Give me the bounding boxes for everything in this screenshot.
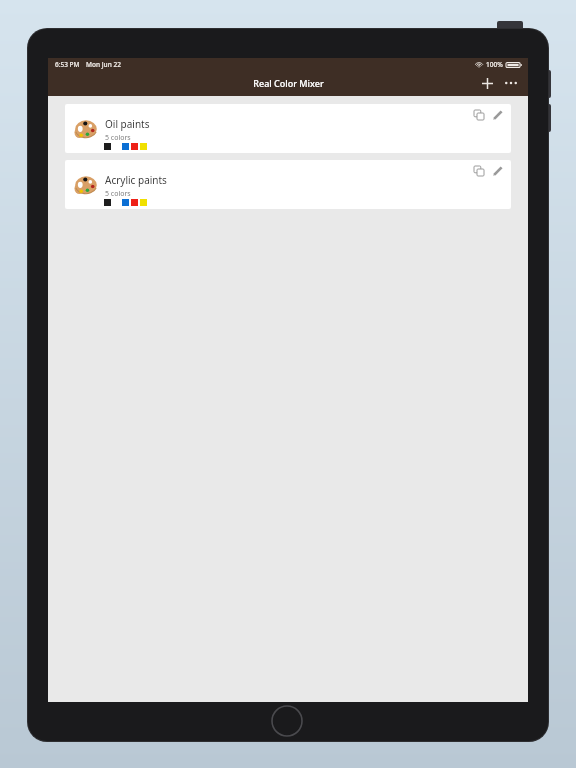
button[interactable]: More options bbox=[500, 72, 522, 94]
button[interactable]: Edit Oil paints bbox=[489, 106, 507, 124]
staticText: Mon Jun 22 bbox=[86, 60, 121, 69]
staticText: 5 colors bbox=[105, 133, 131, 143]
button[interactable]: Duplicate Acrylic paints bbox=[65, 160, 511, 209]
button[interactable]: Duplicate Oil paints bbox=[65, 104, 511, 153]
staticText: 5 colors bbox=[105, 189, 131, 199]
staticText: 6:53 PM bbox=[55, 60, 80, 69]
staticText: Oil paints bbox=[105, 117, 150, 131]
staticText: Real Color Mixer bbox=[253, 77, 324, 89]
staticText: Acrylic paints bbox=[105, 173, 167, 187]
button[interactable]: Duplicate Oil paints bbox=[470, 106, 488, 124]
button[interactable]: Edit Acrylic paints bbox=[489, 162, 507, 180]
button[interactable]: Add palette bbox=[476, 72, 498, 94]
button[interactable]: Duplicate Acrylic paints bbox=[470, 162, 488, 180]
staticText: 100% bbox=[486, 60, 503, 69]
